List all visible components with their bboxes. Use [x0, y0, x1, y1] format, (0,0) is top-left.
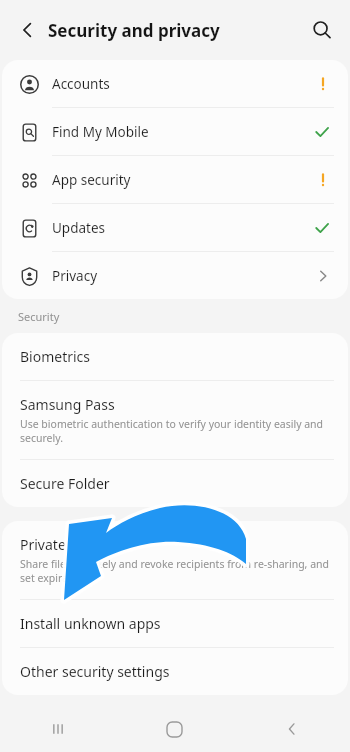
staticText: Biometrics — [20, 347, 91, 366]
staticText: Privacy — [52, 267, 316, 285]
button[interactable]: Install unknown apps — [2, 600, 348, 647]
button[interactable]: Secure Folder — [2, 460, 348, 507]
button[interactable]: Biometrics — [2, 333, 348, 380]
button[interactable]: Accounts — [2, 60, 348, 107]
staticText: Install unknown apps — [20, 614, 161, 633]
button[interactable]: Private Share — [2, 521, 348, 599]
button[interactable]: Back — [233, 706, 350, 752]
staticText: Other security settings — [20, 662, 170, 681]
staticText: Use biometric authentication to verify y… — [20, 417, 330, 445]
staticText: Secure Folder — [20, 474, 110, 493]
button[interactable]: Search — [302, 10, 342, 50]
button[interactable]: Home — [116, 706, 233, 752]
button[interactable]: Back — [8, 10, 48, 50]
staticText: Samsung Pass — [20, 395, 115, 414]
staticText: Share files privately and revoke recipie… — [20, 557, 330, 585]
button[interactable]: Recent apps — [0, 706, 116, 752]
button[interactable]: Privacy — [2, 252, 348, 299]
staticText: App security — [52, 171, 316, 189]
staticText: Find My Mobile — [52, 123, 314, 141]
button[interactable]: Samsung Pass — [2, 381, 348, 459]
staticText: Security — [18, 309, 60, 324]
button[interactable]: Find My Mobile — [2, 108, 348, 155]
button[interactable]: App security — [2, 156, 348, 203]
staticText: Updates — [52, 219, 314, 237]
button[interactable]: Updates — [2, 204, 348, 251]
staticText: Security and privacy — [48, 19, 220, 42]
button[interactable]: Other security settings — [2, 648, 348, 695]
staticText: Accounts — [52, 75, 316, 93]
staticText: Private Share — [20, 535, 108, 554]
